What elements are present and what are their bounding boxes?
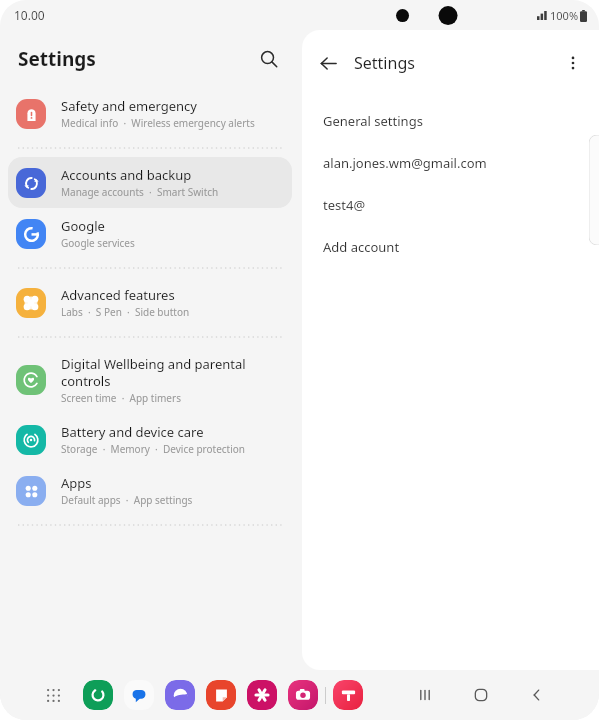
staticText: Google	[61, 217, 105, 235]
staticText: General settings	[323, 112, 423, 130]
button[interactable]: internet	[165, 680, 195, 710]
button[interactable]: alan.jones.wm@gmail.com	[302, 142, 599, 184]
staticText: alan.jones.wm@gmail.com	[323, 154, 487, 172]
button[interactable]: settings	[333, 680, 363, 710]
button[interactable]: Recents	[407, 677, 443, 713]
button[interactable]: Back	[311, 46, 345, 80]
button[interactable]: Add account	[302, 226, 599, 268]
button[interactable]: Battery and device care	[8, 414, 292, 465]
button[interactable]: Accounts and backup	[8, 157, 292, 208]
staticText: Advanced features	[61, 286, 175, 304]
staticText: Labs · S Pen · Side button	[61, 305, 190, 319]
staticText: Screen time · App timers	[61, 391, 181, 405]
staticText: Medical info · Wireless emergency alerts	[61, 116, 255, 130]
staticText: Safety and emergency	[61, 97, 197, 115]
button[interactable]: General settings	[302, 100, 599, 142]
staticText: Settings	[354, 52, 415, 74]
button[interactable]: Home	[463, 677, 499, 713]
button[interactable]: messages	[124, 680, 154, 710]
staticText: Storage · Memory · Device protection	[61, 442, 246, 456]
staticText: Google services	[61, 236, 135, 250]
button[interactable]: phone	[83, 680, 113, 710]
staticText: Battery and device care	[61, 423, 204, 441]
staticText: 100%	[550, 8, 579, 23]
staticText: test4@	[323, 196, 366, 214]
button[interactable]: Apps	[38, 680, 68, 710]
button[interactable]: Apps	[8, 465, 292, 516]
button[interactable]: Advanced features	[8, 277, 292, 328]
button[interactable]: Safety and emergency	[8, 88, 292, 139]
staticText: 10.00	[14, 7, 45, 23]
staticText: Accounts and backup	[61, 166, 192, 184]
button[interactable]: Back	[519, 677, 555, 713]
button[interactable]: Search	[252, 42, 286, 76]
staticText: Add account	[323, 238, 400, 256]
button[interactable]: test4@	[302, 184, 599, 226]
staticText: Manage accounts · Smart Switch	[61, 185, 219, 199]
button[interactable]: camera	[288, 680, 318, 710]
button[interactable]: gallery	[247, 680, 277, 710]
button[interactable]: More options	[557, 47, 589, 79]
staticText: Default apps · App settings	[61, 493, 193, 507]
staticText: Settings	[18, 46, 96, 72]
button[interactable]: Digital Wellbeing and parental controls	[8, 346, 292, 414]
staticText: Digital Wellbeing and parental controls	[61, 355, 282, 390]
staticText: Apps	[61, 474, 92, 492]
button[interactable]: notes	[206, 680, 236, 710]
button[interactable]: Google	[8, 208, 292, 259]
